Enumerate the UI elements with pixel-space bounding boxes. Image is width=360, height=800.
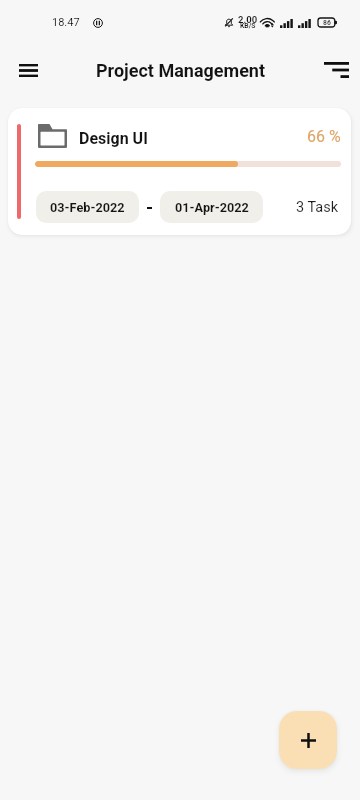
button[interactable]: Filter xyxy=(316,50,356,90)
staticText: 86 xyxy=(323,19,331,27)
button[interactable]: 01-Apr-2022 xyxy=(160,191,263,223)
staticText: 01-Apr-2022 xyxy=(175,200,249,215)
staticText: 18.47 xyxy=(52,16,80,29)
staticText: 3 Task xyxy=(296,199,339,216)
button[interactable]: Add project xyxy=(279,711,337,769)
button[interactable]: Design UI xyxy=(8,108,351,235)
button[interactable]: 03-Feb-2022 xyxy=(36,191,139,223)
staticText: 66 % xyxy=(307,127,341,146)
button[interactable]: Menu xyxy=(8,50,48,90)
staticText: 2.00 xyxy=(238,14,258,25)
staticText: KB/S xyxy=(240,22,256,30)
staticText: Project Management xyxy=(96,60,266,81)
staticText: 03-Feb-2022 xyxy=(50,200,125,215)
staticText: Design UI xyxy=(79,129,148,148)
